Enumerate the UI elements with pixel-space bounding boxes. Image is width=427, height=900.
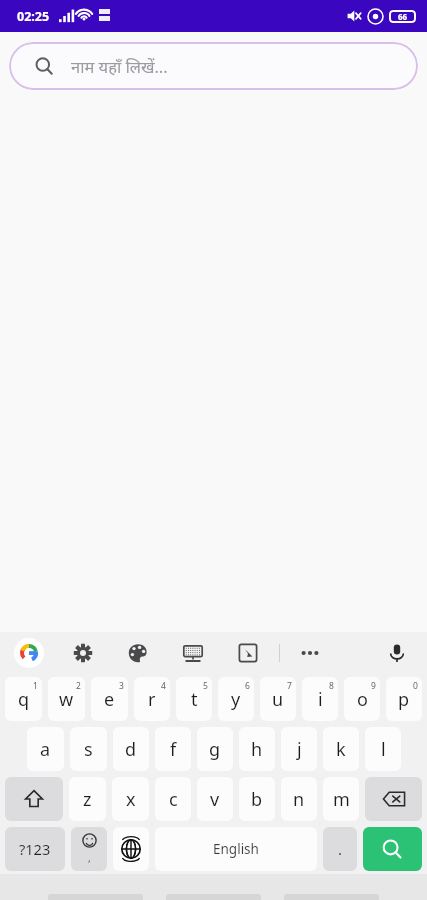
staticText: 6	[245, 680, 250, 692]
staticText: w	[59, 687, 74, 712]
staticText: 8	[329, 680, 334, 692]
button[interactable]: f	[155, 727, 191, 771]
button[interactable]: Settings	[70, 640, 96, 666]
button[interactable]: s	[70, 727, 107, 771]
staticText: h	[251, 737, 263, 762]
staticText: 7	[287, 680, 292, 692]
button[interactable]: p	[386, 677, 422, 721]
button[interactable]: Voice input	[384, 640, 410, 666]
staticText: a	[40, 737, 51, 762]
staticText: 0	[413, 680, 418, 692]
staticText: English	[213, 840, 259, 858]
staticText: 66	[398, 11, 408, 22]
staticText: f	[170, 737, 177, 762]
staticText: g	[209, 737, 221, 762]
button[interactable]: o	[344, 677, 380, 721]
button[interactable]: Search	[363, 827, 422, 871]
staticText: n	[293, 787, 305, 812]
staticText: p	[398, 687, 410, 712]
button[interactable]: v	[197, 777, 233, 821]
staticText: q	[18, 687, 30, 712]
button[interactable]: More options	[297, 640, 323, 666]
button[interactable]: a	[27, 727, 64, 771]
button[interactable]: Stickers	[180, 640, 206, 666]
button[interactable]: d	[113, 727, 149, 771]
staticText: 1	[33, 680, 38, 692]
staticText: d	[125, 737, 137, 762]
button[interactable]: Handwriting	[235, 640, 261, 666]
staticText: y	[231, 687, 241, 712]
staticText: m	[333, 787, 350, 812]
button[interactable]: नाम यहाँ लिखें...	[9, 42, 418, 90]
staticText: 02:25	[17, 8, 50, 25]
button[interactable]: r	[134, 677, 170, 721]
button[interactable]: Google	[14, 638, 44, 668]
staticText: c	[169, 787, 178, 812]
staticText: 3	[119, 680, 124, 692]
button[interactable]: Emoji and comma	[71, 827, 107, 871]
staticText: i	[318, 687, 323, 712]
staticText: .	[338, 839, 343, 859]
button[interactable]: c	[155, 777, 191, 821]
button[interactable]: z	[69, 777, 106, 821]
button[interactable]: h	[239, 727, 275, 771]
staticText: ?123	[19, 839, 51, 859]
staticText: u	[272, 687, 284, 712]
button[interactable]: j	[281, 727, 317, 771]
button[interactable]: l	[365, 727, 401, 771]
button[interactable]: Themes	[125, 640, 151, 666]
staticText: l	[381, 737, 386, 762]
button[interactable]: y	[218, 677, 254, 721]
button[interactable]: English	[155, 827, 317, 871]
staticText: t	[191, 687, 198, 712]
staticText: 4	[161, 680, 166, 692]
button[interactable]: b	[239, 777, 275, 821]
staticText: j	[297, 737, 302, 762]
button[interactable]: Change language	[113, 827, 149, 871]
button[interactable]: e	[91, 677, 128, 721]
staticText: s	[84, 737, 93, 762]
staticText: k	[336, 737, 346, 762]
staticText: ,	[88, 851, 91, 865]
button[interactable]: t	[176, 677, 212, 721]
button[interactable]: Shift	[5, 777, 63, 821]
staticText: e	[104, 687, 115, 712]
button[interactable]: u	[260, 677, 296, 721]
button[interactable]: i	[302, 677, 338, 721]
button[interactable]: x	[112, 777, 149, 821]
staticText: o	[357, 687, 368, 712]
button[interactable]: g	[197, 727, 233, 771]
staticText: b	[251, 787, 263, 812]
staticText: 9	[371, 680, 376, 692]
button[interactable]: ?123	[5, 827, 65, 871]
staticText: r	[148, 687, 156, 712]
staticText: x	[126, 787, 136, 812]
button[interactable]: q	[5, 677, 42, 721]
button[interactable]: Backspace	[365, 777, 422, 821]
staticText: 5	[203, 680, 208, 692]
staticText: v	[210, 787, 220, 812]
button[interactable]: w	[48, 677, 85, 721]
button[interactable]: k	[323, 727, 359, 771]
staticText: z	[83, 787, 92, 812]
button[interactable]: n	[281, 777, 317, 821]
staticText: नाम यहाँ लिखें...	[71, 55, 168, 77]
staticText: 2	[76, 680, 81, 692]
button[interactable]: m	[323, 777, 359, 821]
button[interactable]: .	[323, 827, 357, 871]
